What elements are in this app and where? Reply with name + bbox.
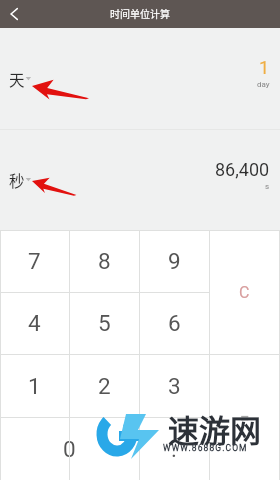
button[interactable]: 0	[0, 417, 139, 480]
staticText: 2	[98, 373, 111, 399]
staticText: 3	[168, 373, 181, 399]
staticText: 8	[98, 248, 111, 274]
staticText: 7	[28, 248, 41, 274]
staticText: 1	[259, 57, 270, 78]
button[interactable]: 1	[0, 354, 69, 417]
staticText: 0	[63, 436, 76, 462]
button[interactable]: 9	[139, 230, 209, 292]
button[interactable]: 2	[69, 354, 139, 417]
staticText: 1	[28, 373, 41, 399]
staticText: 6	[168, 310, 181, 336]
button[interactable]: 6	[139, 292, 209, 354]
staticText: WWW.8688G.COM	[163, 443, 248, 453]
button[interactable]: Back	[0, 0, 30, 28]
staticText: 天	[9, 68, 25, 90]
staticText: .	[171, 436, 177, 462]
button[interactable]: 8	[69, 230, 139, 292]
staticText: 时间单位计算	[110, 6, 170, 20]
button[interactable]: 7	[0, 230, 69, 292]
staticText: 速游网	[168, 406, 261, 451]
staticText: =	[240, 408, 250, 428]
button[interactable]: =	[209, 355, 280, 480]
button[interactable]: 5	[69, 292, 139, 354]
staticText: C	[239, 283, 250, 302]
staticText: 9	[168, 248, 181, 274]
button[interactable]: C	[209, 230, 280, 355]
staticText: 5	[98, 310, 111, 336]
staticText: 秒	[9, 169, 25, 191]
button[interactable]: 天	[0, 28, 280, 129]
button[interactable]: 3	[139, 354, 209, 417]
staticText: 4	[28, 310, 41, 336]
staticText: 86,400	[215, 159, 270, 180]
button[interactable]: 4	[0, 292, 69, 354]
button[interactable]: 秒	[0, 130, 280, 230]
button[interactable]: .	[139, 417, 209, 480]
staticText: day	[257, 80, 270, 89]
staticText: s	[265, 182, 270, 191]
